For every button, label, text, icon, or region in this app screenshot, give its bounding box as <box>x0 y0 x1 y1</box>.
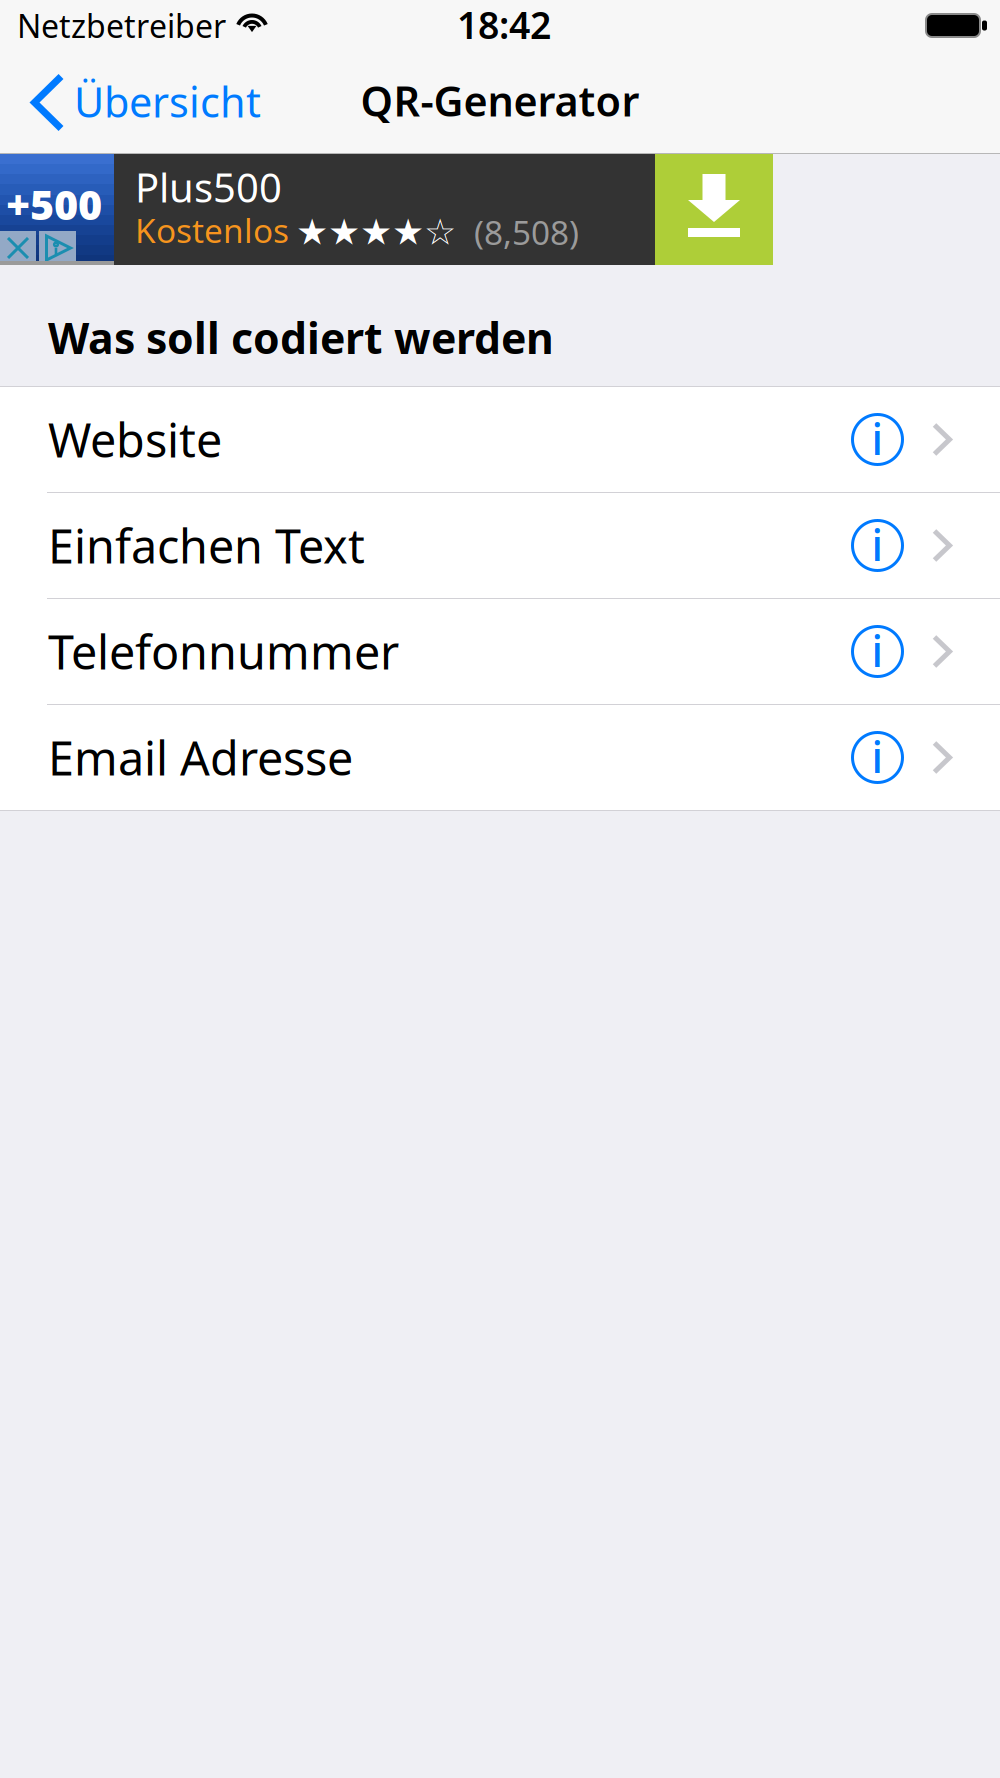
staticText: Netzbetreiber <box>17 4 226 47</box>
staticText: +500 <box>6 177 102 231</box>
staticText: 18:42 <box>457 0 551 49</box>
staticText: Kostenlos <box>135 208 289 252</box>
button[interactable]: Telefonnummer <box>0 599 1000 704</box>
staticText: i <box>871 410 883 467</box>
staticText: (8,508) <box>474 210 579 254</box>
staticText: QR-Generator <box>360 73 639 128</box>
staticText: Was soll codiert werden <box>48 309 554 366</box>
button[interactable]: Close ad <box>0 231 36 265</box>
button[interactable]: Einfachen Text <box>0 493 1000 598</box>
staticText: ★★★★☆ <box>296 212 456 252</box>
staticText: i <box>871 728 883 785</box>
staticText: i <box>871 516 883 573</box>
button[interactable]: Info Website <box>851 413 904 466</box>
staticText: Plus500 <box>135 160 282 213</box>
staticText: Übersicht <box>74 74 261 129</box>
button[interactable]: Website <box>0 387 1000 492</box>
button[interactable]: Email Adresse <box>0 705 1000 810</box>
button[interactable]: Info Einfachen Text <box>851 519 904 572</box>
button[interactable]: Ad information <box>39 231 76 265</box>
button[interactable]: Info Telefonnummer <box>851 625 904 678</box>
button[interactable]: Info Email Adresse <box>851 731 904 784</box>
staticText: i <box>871 622 883 679</box>
staticText: Email Adresse <box>48 726 353 788</box>
staticText: Einfachen Text <box>48 514 365 576</box>
button[interactable]: +500 <box>0 154 1000 265</box>
button[interactable]: Übersicht <box>0 52 277 152</box>
staticText: Website <box>48 408 222 470</box>
staticText: Telefonnummer <box>48 620 399 682</box>
